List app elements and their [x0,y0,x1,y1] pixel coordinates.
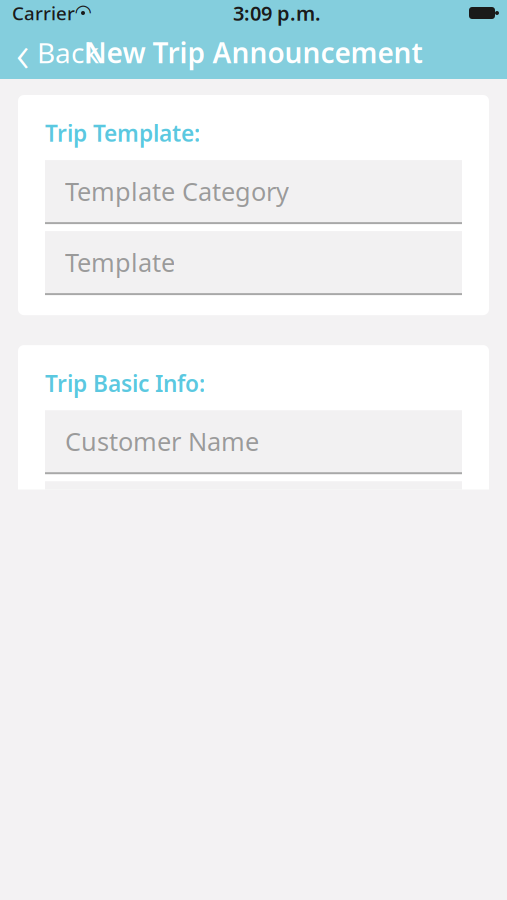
button[interactable]: ‹ [0,26,115,79]
button[interactable]: Template Category [45,160,462,224]
button[interactable]: Template [45,231,462,295]
staticText: Carrier [12,1,75,25]
staticText: Template [65,245,175,279]
staticText: Trip Basic Info: [45,368,205,398]
staticText: New Trip Announcement [84,34,422,71]
staticText: Back [37,34,99,71]
staticText: 3:09 p.m. [233,0,321,26]
staticText: ‹ [16,19,29,86]
staticText: Template Category [65,174,289,208]
staticText: Customer Name [65,424,259,458]
staticText: Trip Template: [45,118,200,148]
staticText: ◠ [74,0,91,23]
button[interactable]: Customer Name [45,410,462,474]
